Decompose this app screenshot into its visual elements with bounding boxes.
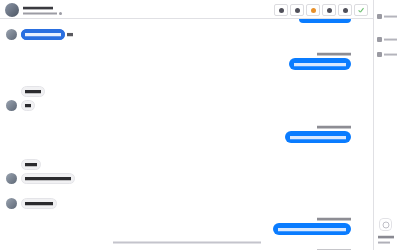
button[interactable]: More options — [338, 4, 352, 16]
button[interactable] — [6, 198, 373, 209]
button[interactable] — [21, 159, 373, 170]
button[interactable] — [377, 52, 397, 57]
button[interactable] — [377, 14, 397, 19]
button[interactable] — [6, 100, 373, 111]
button[interactable] — [0, 217, 351, 235]
button[interactable] — [6, 29, 373, 40]
button[interactable]: Tool — [379, 218, 392, 231]
button[interactable]: Archive — [322, 4, 336, 16]
button[interactable] — [6, 173, 373, 184]
button[interactable] — [0, 125, 351, 143]
button[interactable]: Delete — [290, 4, 304, 16]
button[interactable] — [299, 19, 351, 23]
button[interactable] — [21, 86, 373, 97]
button[interactable]: Info — [274, 4, 288, 16]
button[interactable] — [5, 3, 62, 17]
button[interactable]: Flag — [306, 4, 320, 16]
button[interactable] — [0, 52, 351, 70]
button[interactable]: Mark done — [354, 4, 368, 16]
button[interactable] — [377, 37, 397, 42]
